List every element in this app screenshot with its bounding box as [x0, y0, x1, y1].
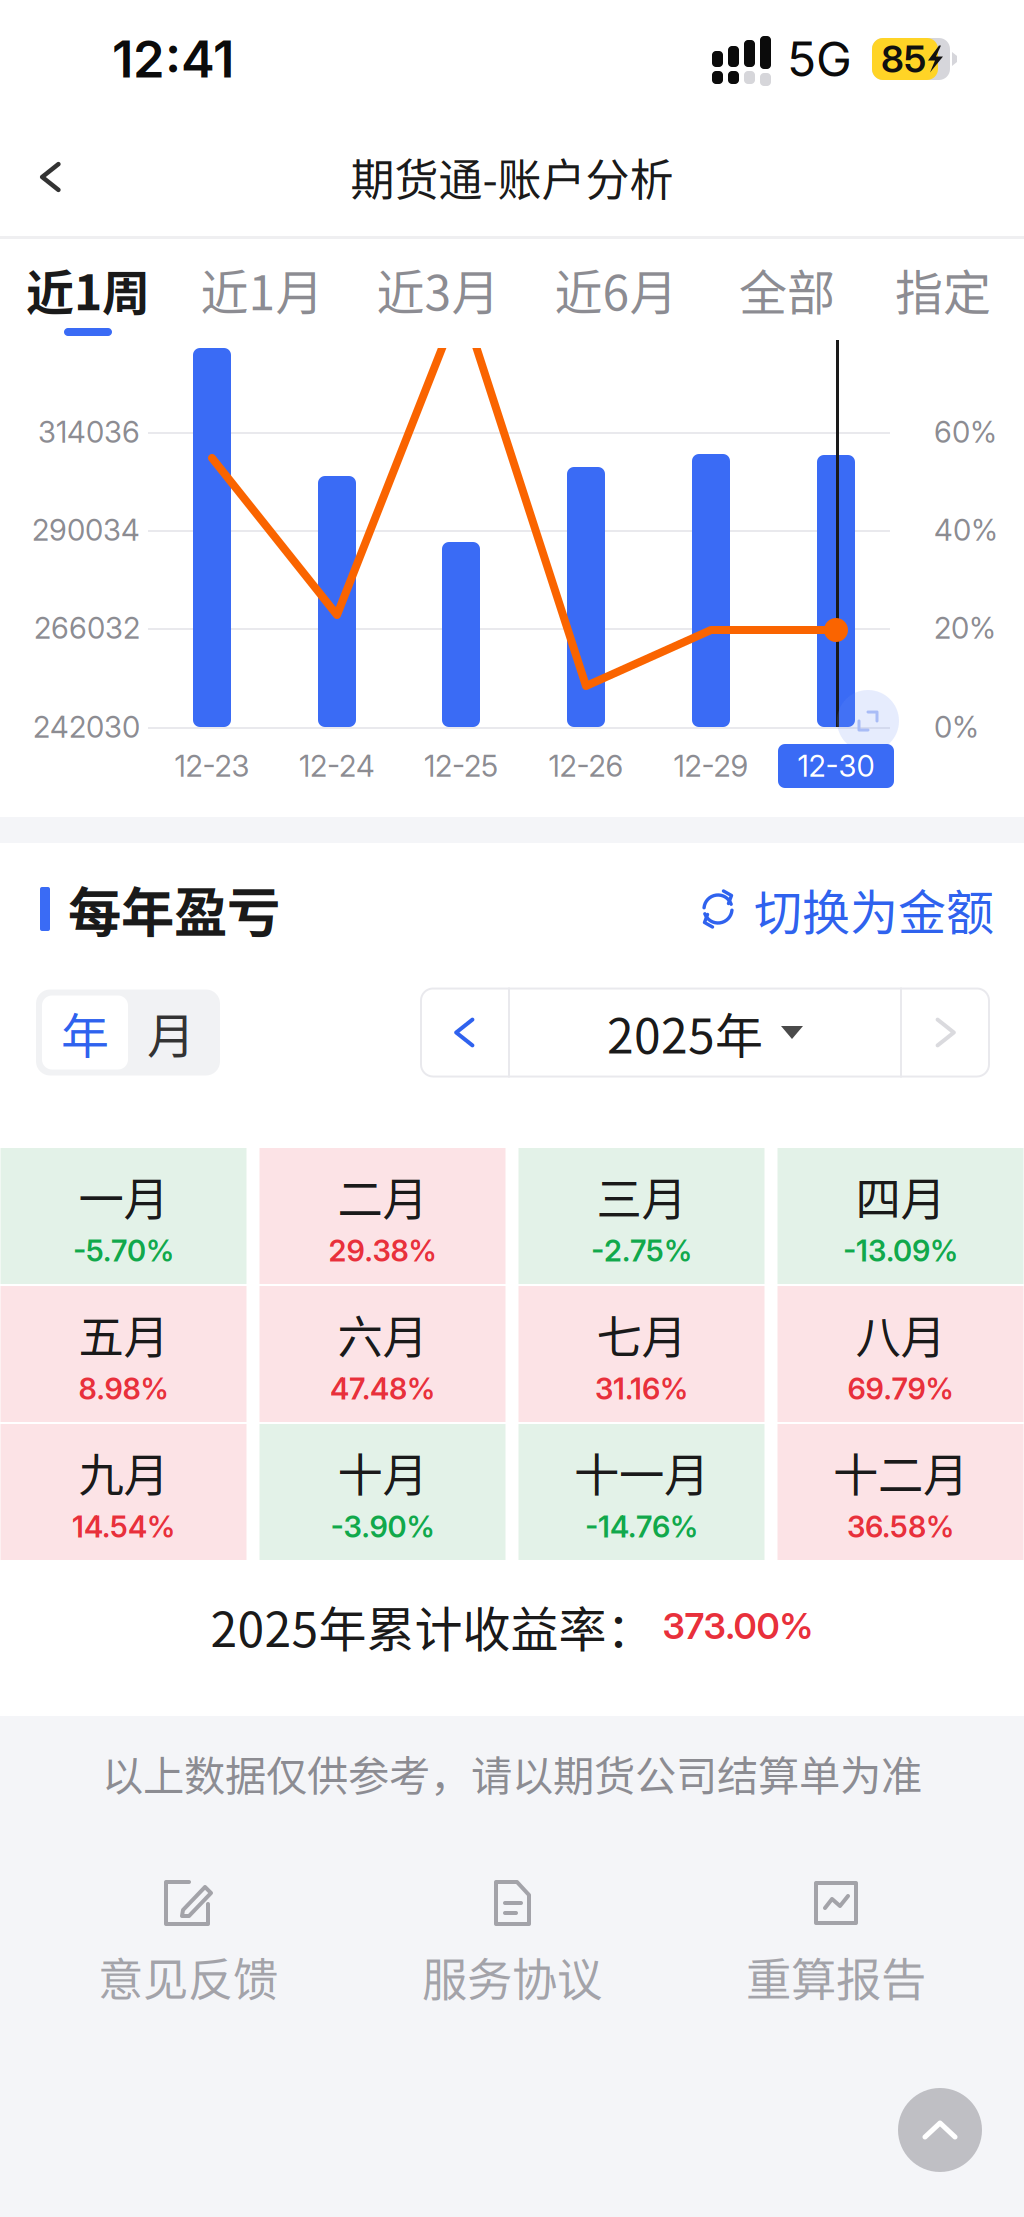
staticText: 切换为金额: [754, 874, 994, 944]
staticText: 12-25: [424, 748, 498, 784]
staticText: 十二月: [833, 1439, 968, 1505]
staticText: 十月: [337, 1439, 427, 1505]
staticText: 年: [61, 998, 109, 1067]
staticText: 指定: [895, 254, 991, 324]
staticText: 近1月: [200, 254, 323, 324]
staticText: 二月: [337, 1163, 427, 1229]
staticText: 60%: [934, 414, 997, 450]
staticText: 近1周: [26, 254, 150, 324]
button[interactable]: 重算报告: [686, 1878, 986, 2048]
button[interactable]: 近6月: [532, 239, 700, 340]
button[interactable]: 指定: [859, 239, 1024, 340]
staticText: 29.38%: [328, 1233, 436, 1269]
button[interactable]: 全部: [703, 239, 871, 340]
button[interactable]: 年: [42, 995, 128, 1069]
button[interactable]: 月: [128, 995, 214, 1069]
staticText: 242030: [33, 709, 140, 745]
staticText: 服务协议: [422, 1944, 602, 2010]
staticText: 2025年累计收益率：: [210, 1591, 654, 1661]
staticText: 12-30: [797, 748, 874, 784]
staticText: 314036: [38, 414, 140, 450]
staticText: 12-26: [548, 748, 623, 784]
button[interactable]: 近1周: [4, 239, 172, 340]
staticText: 以上数据仅供参考，请以期货公司结算单为准: [102, 1743, 922, 1803]
button[interactable]: 五月: [0, 1286, 246, 1422]
button[interactable]: 十一月: [518, 1424, 764, 1560]
staticText: 20%: [934, 610, 996, 646]
staticText: 期货通-账户分析: [350, 145, 673, 209]
staticText: -5.70%: [73, 1233, 174, 1269]
staticText: 六月: [337, 1301, 427, 1367]
button[interactable]: 回到顶部: [898, 2088, 982, 2172]
staticText: 一月: [78, 1163, 168, 1229]
staticText: 12:41: [112, 28, 234, 90]
staticText: 意见反馈: [98, 1944, 278, 2010]
button[interactable]: 近1月: [178, 239, 346, 340]
staticText: 12-23: [174, 748, 249, 784]
button[interactable]: 切换为金额: [698, 874, 994, 944]
staticText: 12-24: [299, 748, 375, 784]
staticText: 近3月: [376, 254, 499, 324]
button[interactable]: 九月: [0, 1424, 246, 1560]
staticText: 九月: [78, 1439, 168, 1505]
staticText: -2.75%: [591, 1233, 692, 1269]
staticText: 12-29: [673, 748, 748, 784]
button[interactable]: 四月: [777, 1148, 1023, 1284]
staticText: 七月: [596, 1301, 686, 1367]
button[interactable]: 下一年: [902, 987, 990, 1077]
staticText: 47.48%: [330, 1371, 435, 1407]
staticText: 0%: [934, 709, 979, 745]
staticText: 8.98%: [78, 1371, 168, 1407]
button[interactable]: 三月: [518, 1148, 764, 1284]
staticText: 31.16%: [595, 1371, 688, 1407]
button[interactable]: 一月: [0, 1148, 246, 1284]
staticText: 373.00%: [662, 1604, 813, 1648]
button[interactable]: 十月: [259, 1424, 505, 1560]
button[interactable]: 意见反馈: [38, 1878, 338, 2048]
staticText: 每年盈亏: [68, 870, 280, 948]
staticText: -14.76%: [585, 1509, 698, 1545]
staticText: -13.09%: [843, 1233, 958, 1269]
button[interactable]: 服务协议: [362, 1878, 662, 2048]
staticText: 全部: [739, 254, 835, 324]
button[interactable]: 六月: [259, 1286, 505, 1422]
staticText: 八月: [855, 1301, 945, 1367]
button[interactable]: 上一年: [420, 987, 508, 1077]
staticText: 266032: [34, 610, 140, 646]
staticText: 近6月: [554, 254, 677, 324]
staticText: 三月: [596, 1163, 686, 1229]
button[interactable]: 十二月: [777, 1424, 1023, 1560]
button[interactable]: 七月: [518, 1286, 764, 1422]
staticText: -3.90%: [330, 1509, 434, 1545]
staticText: 40%: [934, 512, 998, 548]
staticText: 69.79%: [847, 1371, 953, 1407]
button[interactable]: 返回: [0, 118, 100, 236]
button[interactable]: 二月: [259, 1148, 505, 1284]
staticText: 十一月: [574, 1439, 709, 1505]
staticText: 2025年: [607, 998, 763, 1067]
staticText: 290034: [32, 512, 140, 548]
button[interactable]: 近3月: [354, 239, 522, 340]
button[interactable]: 八月: [777, 1286, 1023, 1422]
staticText: 85: [881, 36, 926, 82]
staticText: 月: [147, 998, 195, 1067]
staticText: 四月: [855, 1163, 945, 1229]
staticText: 重算报告: [746, 1944, 926, 2010]
staticText: 36.58%: [847, 1509, 954, 1545]
staticText: 5G: [787, 30, 852, 88]
staticText: 14.54%: [72, 1509, 175, 1545]
staticText: 五月: [78, 1301, 168, 1367]
